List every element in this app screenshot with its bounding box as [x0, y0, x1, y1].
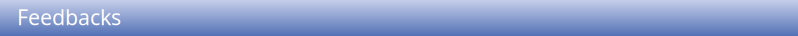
staticText: Feedbacks [17, 3, 121, 31]
